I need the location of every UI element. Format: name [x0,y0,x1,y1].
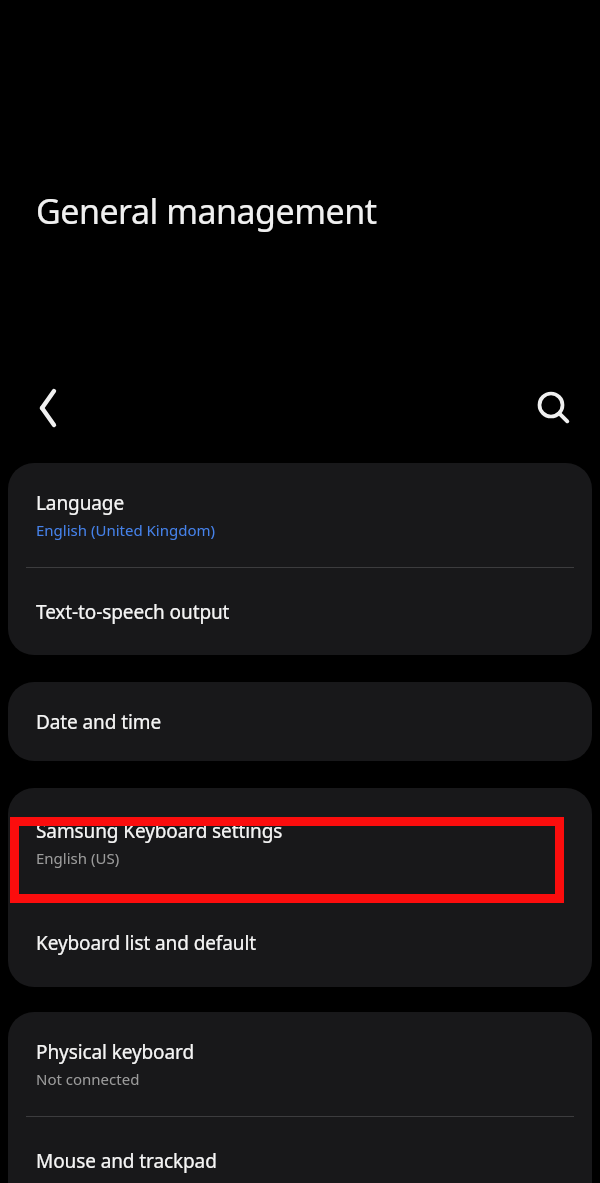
staticText: Physical keyboard [36,1039,195,1065]
button[interactable]: Text-to-speech output [8,568,592,655]
staticText: Not connected [36,1069,140,1089]
button[interactable]: Keyboard list and default [8,898,592,987]
button[interactable]: Search [525,380,581,436]
staticText: General management [36,188,377,234]
staticText: Samsung Keyboard settings [36,818,283,844]
staticText: Date and time [36,709,162,735]
button[interactable]: Mouse and trackpad [8,1117,592,1183]
staticText: English (US) [36,848,120,868]
button[interactable]: Language [8,463,592,567]
staticText: Text-to-speech output [36,599,230,625]
button[interactable]: Samsung Keyboard settings [8,788,592,898]
button[interactable]: Physical keyboard [8,1012,592,1116]
staticText: Language [36,490,125,516]
staticText: English (United Kingdom) [36,520,216,540]
button[interactable]: Date and time [8,682,592,761]
staticText: Keyboard list and default [36,930,257,956]
staticText: Mouse and trackpad [36,1148,217,1174]
button[interactable]: Navigate up [20,380,76,436]
